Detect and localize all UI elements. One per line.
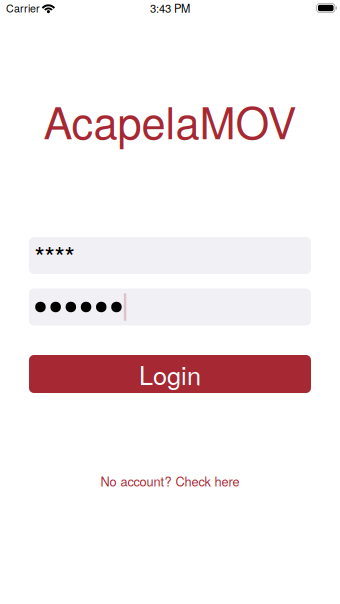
button[interactable]: Password [29, 288, 311, 325]
button[interactable]: Login [29, 355, 311, 393]
staticText: Login [139, 356, 201, 392]
staticText: Carrier [6, 0, 40, 16]
button[interactable]: No account? Check here [100, 474, 239, 488]
staticText: **** [34, 236, 74, 275]
button[interactable]: Username [29, 237, 311, 274]
staticText: 3:43 PM [150, 0, 190, 16]
staticText: No account? Check here [100, 472, 239, 490]
staticText: AcapelaMOV [43, 89, 296, 152]
